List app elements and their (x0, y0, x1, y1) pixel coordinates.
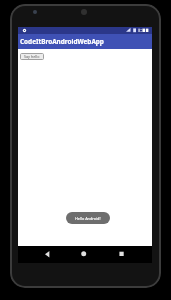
staticText: CodeItBroAndroidWebApp (20, 37, 104, 46)
button[interactable]: Say hello (20, 53, 44, 60)
staticText: Say hello (24, 54, 40, 59)
button[interactable]: Hello Android! (66, 212, 110, 224)
staticText: Hello Android! (75, 216, 101, 221)
button[interactable] (18, 246, 152, 263)
